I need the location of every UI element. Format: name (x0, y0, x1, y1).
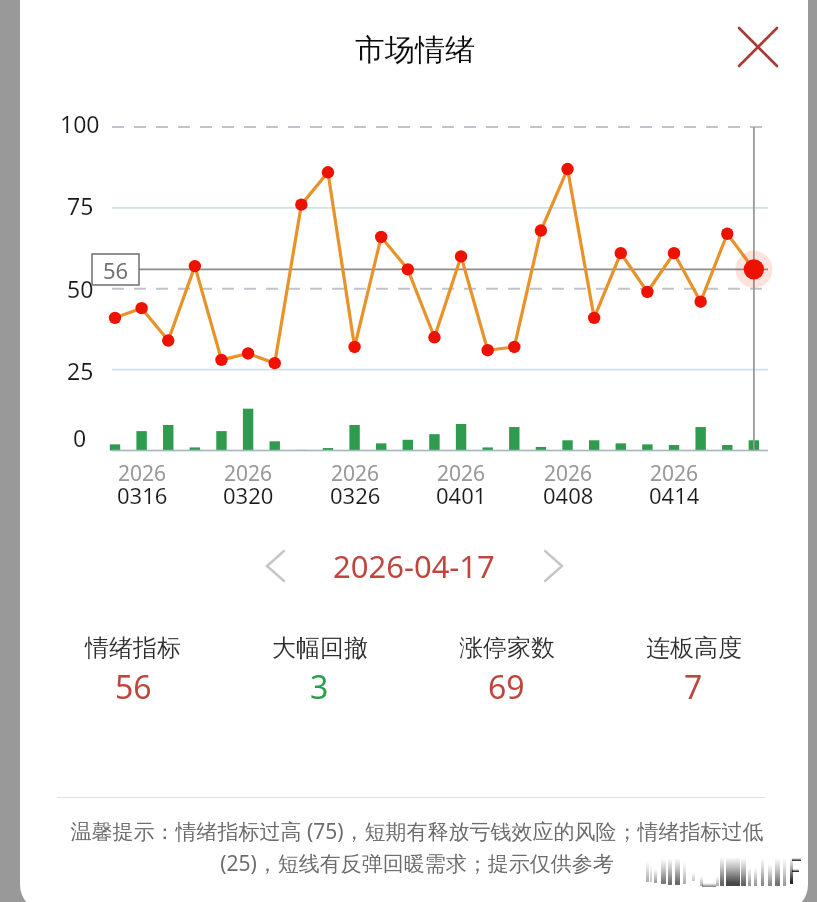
staticText: 2026-04-17 (333, 545, 495, 587)
staticText: 50 (67, 273, 94, 304)
staticText: 7 (684, 665, 703, 709)
staticText: 100 (60, 108, 100, 139)
staticText: 连板高度 (646, 633, 742, 663)
staticText: 56 (103, 255, 129, 285)
staticText: 大幅回撤 (272, 633, 368, 663)
staticText: 3 (310, 665, 329, 709)
button[interactable]: Next day (527, 540, 579, 592)
staticText: 市场情绪 (355, 31, 475, 69)
staticText: 0408 (543, 480, 594, 510)
staticText: 69 (488, 665, 525, 709)
staticText: 0401 (436, 480, 487, 510)
button[interactable]: Previous day (249, 540, 301, 592)
staticText: 2026 (650, 459, 699, 488)
button[interactable]: 2026-04-17 (319, 540, 509, 592)
button[interactable]: 涨停家数 (413, 633, 600, 709)
staticText: 0326 (330, 480, 381, 510)
button[interactable]: 情绪指标 (40, 633, 226, 709)
staticText: 0414 (649, 480, 700, 510)
staticText: 0316 (117, 480, 168, 510)
button[interactable]: 大幅回撤 (226, 633, 413, 709)
staticText: 2026 (118, 459, 167, 488)
staticText: 涨停家数 (459, 633, 555, 663)
staticText: 2026 (544, 459, 593, 488)
staticText: 25 (67, 355, 94, 386)
staticText: 2026 (224, 459, 273, 488)
staticText: 温馨提示：情绪指标过高 (75)，短期有释放亏钱效应的风险；情绪指标过低 (25… (62, 817, 772, 877)
staticText: 0 (73, 422, 87, 453)
button[interactable]: 连板高度 (600, 633, 787, 709)
staticText: 0320 (223, 480, 274, 510)
staticText: 情绪指标 (85, 633, 181, 663)
staticText: 2026 (437, 459, 486, 488)
staticText: 2026 (331, 459, 380, 488)
staticText: 75 (67, 190, 94, 221)
button[interactable]: Close (728, 17, 788, 77)
staticText: 56 (115, 665, 152, 709)
